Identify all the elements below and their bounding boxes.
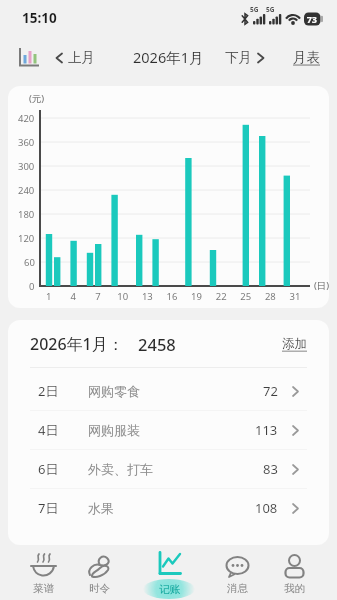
staticText: 网购零食 (88, 383, 140, 399)
button[interactable]: 下月 (225, 49, 265, 66)
staticText: 2026年1月： (30, 333, 124, 355)
button[interactable]: 4日 (38, 411, 299, 449)
staticText: 上月 (68, 49, 95, 66)
button[interactable]: 记账 (143, 550, 195, 599)
staticText: 4日 (38, 421, 88, 439)
staticText: 菜谱 (33, 582, 54, 595)
staticText: 7日 (38, 499, 88, 517)
staticText: 网购服装 (88, 422, 140, 438)
button[interactable]: 我的 (281, 553, 308, 595)
staticText: 72 (263, 382, 278, 400)
button[interactable]: 上月 (55, 49, 95, 66)
staticText: 2458 (138, 333, 176, 355)
staticText: 水果 (88, 500, 114, 516)
button[interactable]: 添加 (282, 336, 307, 352)
staticText: 外卖、打车 (88, 461, 153, 477)
button[interactable]: 2日 (38, 372, 299, 410)
staticText: 2026年1月 (133, 47, 204, 67)
button[interactable]: 7日 (38, 489, 299, 527)
staticText: 时令 (89, 582, 110, 595)
staticText: 113 (255, 421, 278, 439)
staticText: 108 (255, 499, 278, 517)
button[interactable]: 6日 (38, 450, 299, 488)
button[interactable]: 时令 (86, 553, 113, 595)
staticText: 我的 (284, 582, 305, 595)
button[interactable]: 月表 (293, 49, 320, 66)
staticText: 2日 (38, 382, 88, 400)
staticText: 下月 (225, 49, 252, 66)
button[interactable]: 菜谱 (30, 553, 57, 595)
staticText: 6日 (38, 460, 88, 478)
staticText: 消息 (227, 582, 248, 595)
staticText: 记账 (159, 583, 180, 596)
staticText: 83 (263, 460, 278, 478)
button[interactable]: 消息 (224, 553, 251, 595)
staticText: 15:10 (22, 9, 57, 27)
